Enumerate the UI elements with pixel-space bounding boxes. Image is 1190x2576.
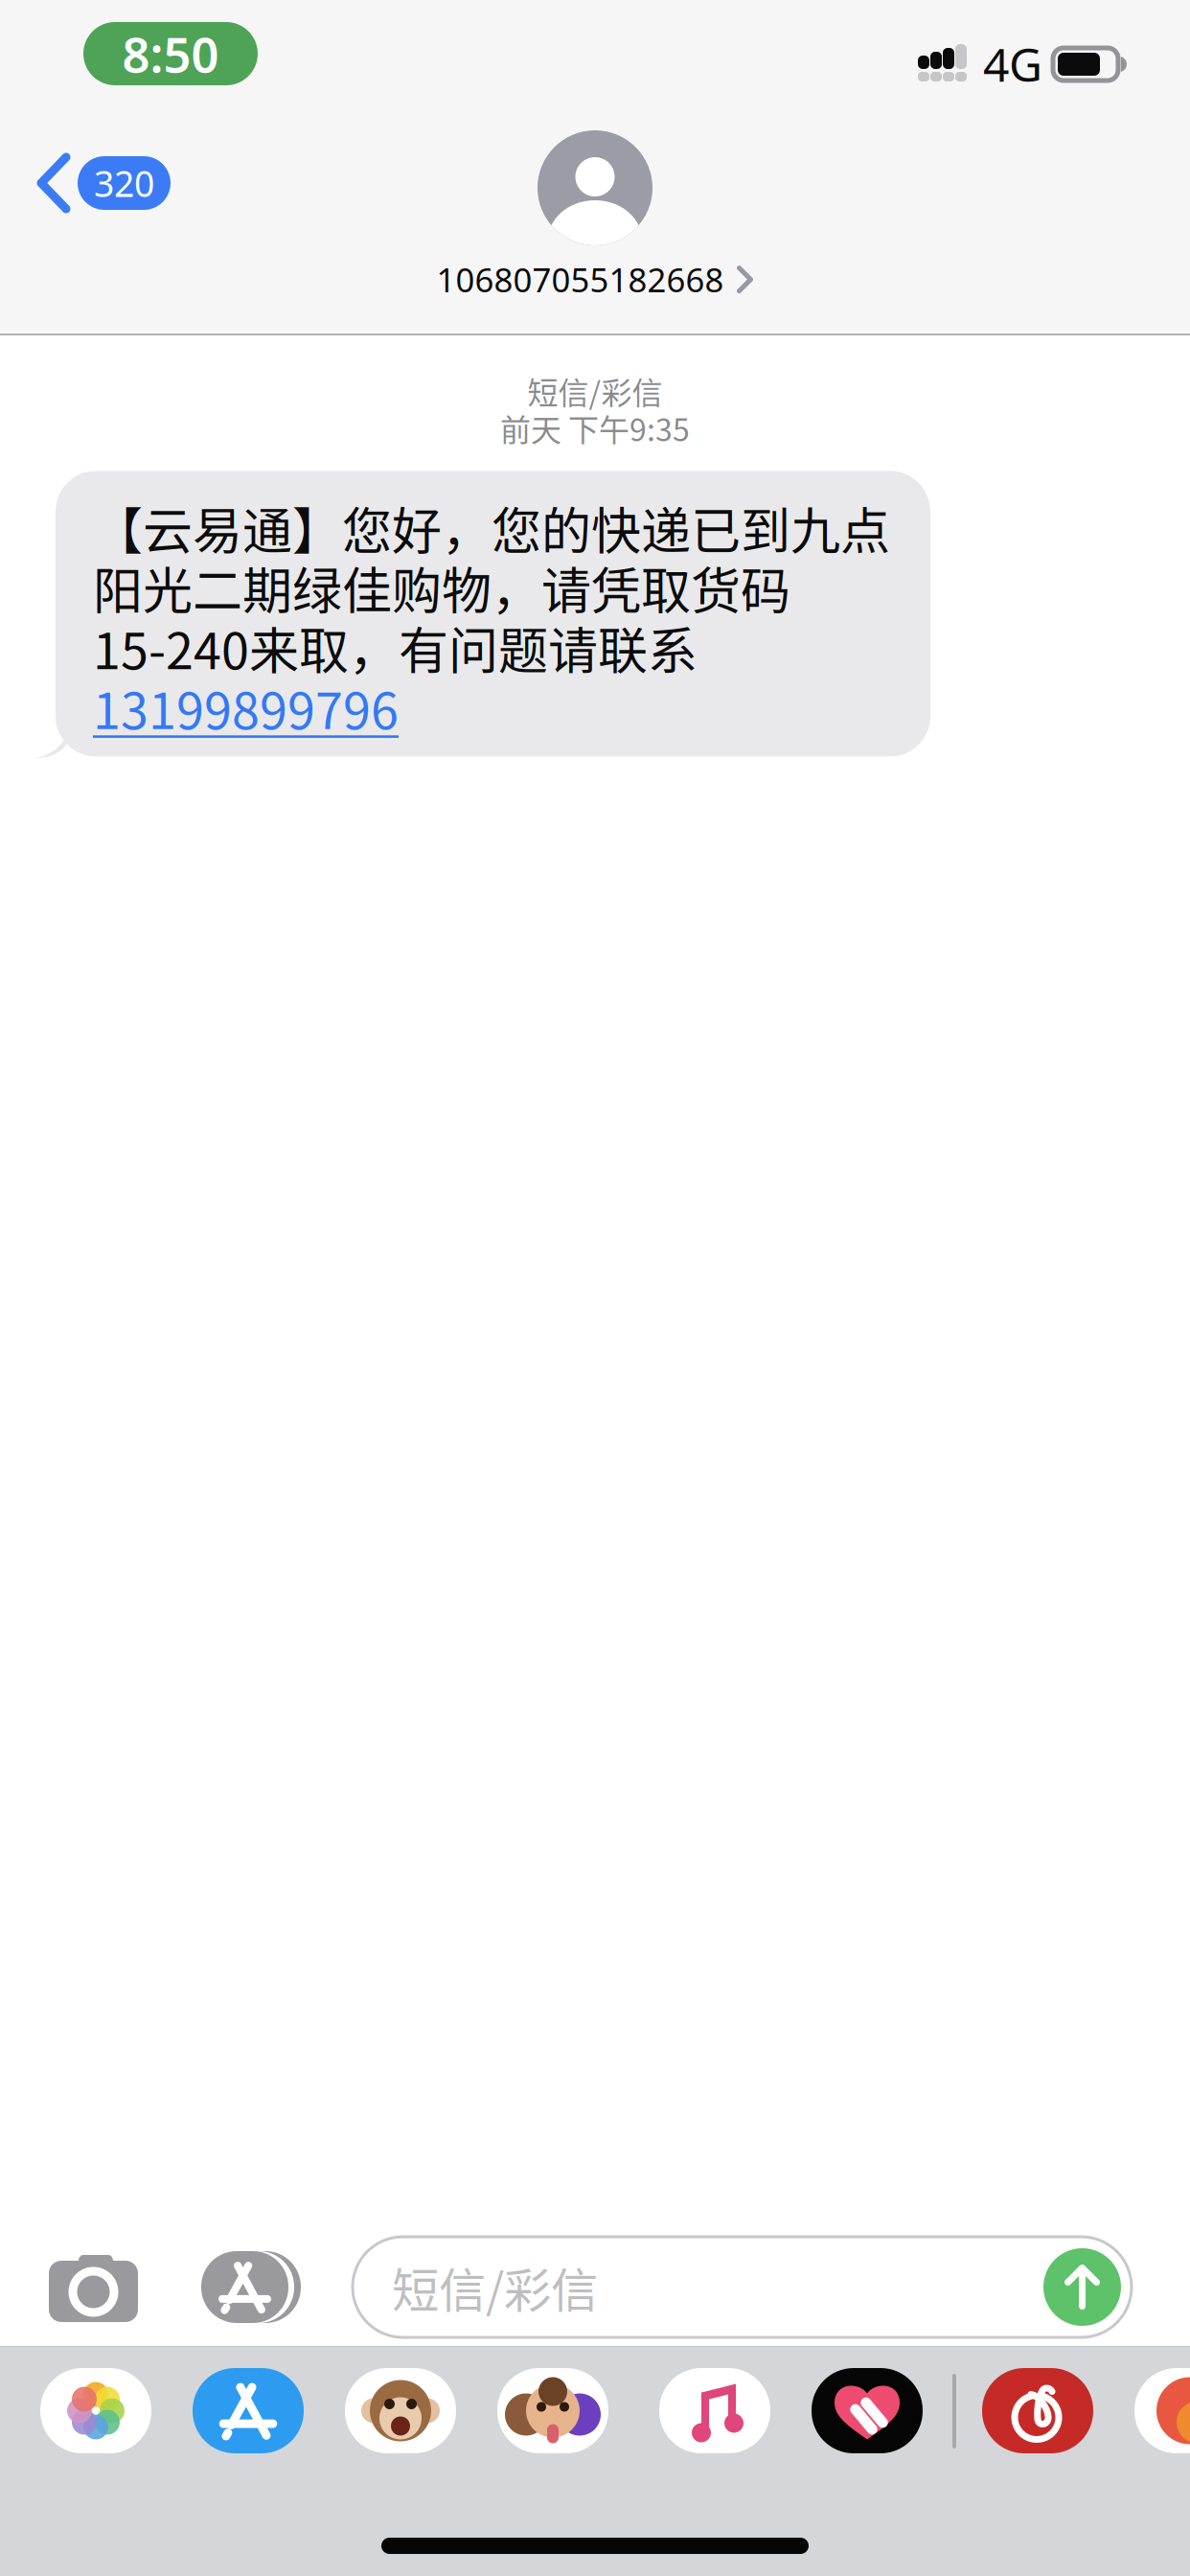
staticText: 320 [94, 159, 154, 207]
button[interactable]: Memoji [497, 2368, 608, 2453]
button[interactable]: App Store [193, 2368, 304, 2453]
staticText: 【云易通】您好，您的快递已到九点阳光二期绿佳购物，请凭取货码15-240来取，有… [93, 498, 890, 677]
button[interactable]: Health [812, 2368, 923, 2453]
staticText: 前天 下午9:35 [500, 408, 690, 448]
staticText: 8:50 [122, 21, 219, 87]
button[interactable]: Music [659, 2368, 770, 2453]
staticText: 短信/彩信 [527, 371, 663, 411]
staticText: 13199899796 [93, 677, 399, 737]
staticText: 短信/彩信 [392, 2256, 598, 2318]
button[interactable]: 320 [0, 107, 182, 224]
button[interactable]: Browser [1134, 2368, 1190, 2453]
button[interactable]: Camera [49, 2253, 138, 2322]
button[interactable]: Photos [40, 2368, 151, 2453]
button[interactable]: App Store [201, 2251, 301, 2323]
staticText: 106807055182668 [436, 257, 724, 302]
button[interactable]: Animoji [345, 2368, 456, 2453]
staticText: 4G [983, 33, 1042, 95]
button[interactable]: NetEase Music [982, 2368, 1093, 2453]
button[interactable]: Send [1043, 2248, 1121, 2326]
